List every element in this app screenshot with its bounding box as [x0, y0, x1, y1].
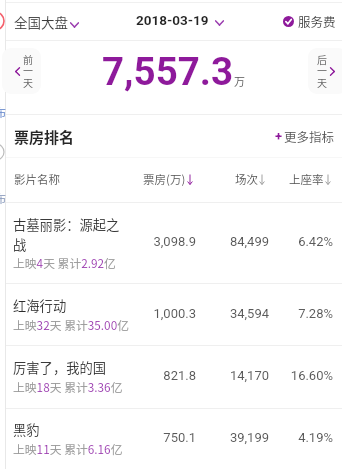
staticText: 14,170 [199, 368, 269, 383]
button[interactable]: 2018-03-19 [136, 12, 224, 28]
button[interactable]: 红海行动 [6, 283, 342, 345]
staticText: 上映32天 累计35.00亿 [13, 316, 129, 333]
staticText: 上映18天 累计3.36亿 [13, 378, 123, 395]
staticText: 场次 [235, 171, 258, 188]
staticText: 7,557.3 [102, 49, 234, 94]
button[interactable]: 票房(万) [143, 171, 194, 188]
button[interactable]: 厉害了，我的国 [6, 345, 342, 408]
staticText: 39,199 [199, 430, 269, 445]
staticText: 票房(万) [143, 171, 186, 188]
staticText: 后 一 天 [317, 52, 327, 90]
staticText: 布 [0, 104, 1, 120]
staticText: 红海行动 [13, 296, 125, 315]
staticText: 全国大盘 [14, 12, 68, 32]
staticText: 821.8 [126, 368, 196, 383]
staticText: 7.28% [263, 306, 333, 321]
staticText: 票房排名 [14, 126, 75, 148]
staticText: 2018-03-19 [136, 12, 209, 28]
staticText: 750.1 [126, 430, 196, 445]
staticText: 布 [0, 190, 1, 206]
staticText: 1,000.3 [126, 306, 196, 321]
staticText: 4.19% [263, 430, 333, 445]
button[interactable]: 上座率 [289, 171, 332, 188]
staticText: 84,499 [199, 234, 269, 249]
staticText: 前 一 天 [23, 52, 33, 90]
button[interactable]: 全国大盘 [14, 12, 79, 32]
staticText: 16.60% [263, 368, 333, 383]
staticText: 万 [234, 73, 245, 89]
staticText: 更多指标 [284, 127, 335, 145]
button[interactable]: 场次 [235, 171, 266, 188]
staticText: 古墓丽影：源起之战 [13, 215, 125, 253]
staticText: + [275, 129, 283, 144]
button[interactable]: 前一天 [2, 48, 41, 94]
staticText: 6.42% [263, 234, 333, 249]
staticText: 黑豹 [13, 420, 125, 439]
button[interactable]: 后一天 [308, 48, 342, 94]
staticText: 服务费 [298, 12, 336, 30]
staticText: 厉害了，我的国 [13, 358, 125, 377]
staticText: 34,594 [199, 306, 269, 321]
button[interactable]: 古墓丽影：源起之战 [6, 202, 342, 283]
staticText: 上座率 [289, 171, 324, 188]
button[interactable]: 服务费 [283, 12, 336, 30]
staticText: 上映11天 累计6.16亿 [13, 440, 123, 457]
button[interactable]: + [275, 127, 335, 145]
staticText: 上映4天 累计2.92亿 [13, 254, 116, 271]
staticText: 3,098.9 [126, 234, 196, 249]
staticText: 影片名称 [14, 171, 60, 188]
button[interactable]: 黑豹 [6, 408, 342, 469]
